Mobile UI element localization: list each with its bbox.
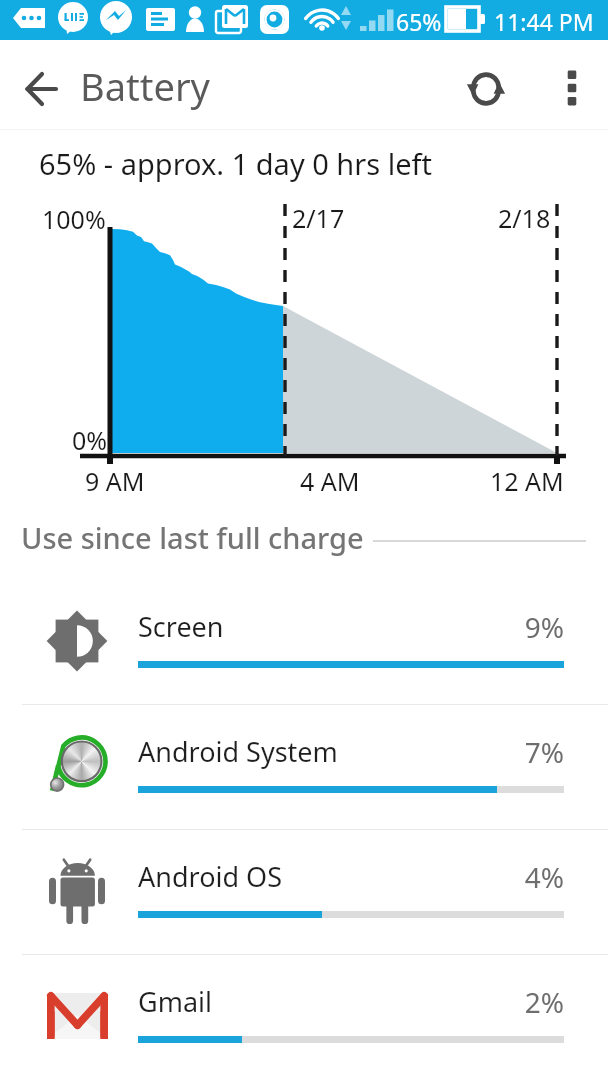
button[interactable]: Android System [0, 705, 608, 829]
button[interactable]: Gmail [0, 955, 608, 1079]
staticText: Battery [80, 60, 210, 112]
staticText: Screen [138, 608, 224, 645]
staticText: Use since last full charge [21, 518, 364, 557]
staticText: 4 AM [300, 464, 360, 498]
staticText: 4% [0, 858, 564, 896]
button[interactable]: More options [544, 60, 600, 116]
staticText: Gmail [138, 983, 212, 1020]
staticText: Android OS [138, 858, 282, 895]
button[interactable]: Back [9, 57, 73, 121]
staticText: 9 AM [85, 464, 145, 498]
staticText: 2/18 [498, 201, 551, 235]
staticText: 65% [396, 6, 442, 37]
staticText: 12 AM [490, 464, 564, 498]
button[interactable]: Refresh [458, 61, 514, 117]
staticText: 100% [42, 202, 106, 236]
staticText: 0% [72, 423, 108, 457]
staticText: Android System [138, 733, 338, 770]
staticText: 9% [0, 608, 564, 646]
staticText: 7% [0, 733, 564, 771]
staticText: 2% [0, 983, 564, 1021]
button[interactable]: Screen [0, 580, 608, 704]
staticText: 11:44 PM [494, 6, 594, 37]
staticText: 65% - approx. 1 day 0 hrs left [39, 144, 432, 183]
staticText: 2/17 [292, 201, 345, 235]
button[interactable]: Android OS [0, 830, 608, 954]
